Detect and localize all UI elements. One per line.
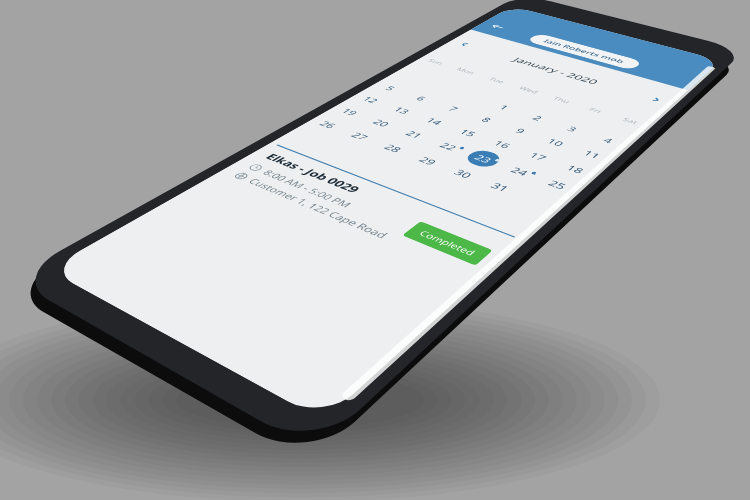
staticText: 26 (316, 119, 340, 130)
staticText: 30 (451, 167, 476, 180)
button[interactable]: 16 (481, 134, 523, 155)
button[interactable]: 31 (478, 175, 523, 199)
staticText: Elkas - Job 0029 (261, 151, 364, 195)
staticText: 1 (496, 103, 512, 112)
button[interactable]: 12 (351, 91, 391, 109)
staticText: Iain Roberts mob (541, 38, 627, 65)
button[interactable]: 21 (393, 124, 435, 145)
button[interactable]: 11 (571, 144, 613, 165)
staticText: 6 (413, 94, 429, 102)
button[interactable]: 23 (462, 148, 505, 170)
button[interactable]: Previous month (444, 36, 484, 53)
staticText: 22 (436, 140, 460, 152)
button[interactable]: 17 (517, 146, 559, 167)
button[interactable]: 26 (307, 115, 349, 134)
button[interactable]: Completed (402, 221, 493, 266)
button[interactable]: Back (477, 19, 519, 35)
button[interactable]: 22 (427, 136, 470, 157)
button[interactable]: 28 (372, 138, 415, 159)
staticText: 28 (381, 142, 405, 154)
staticText: 29 (415, 155, 440, 167)
staticText: 14 (423, 116, 446, 127)
staticText: Tue (487, 76, 507, 84)
staticText: 31 (487, 180, 513, 194)
staticText: 24 (507, 165, 532, 178)
button[interactable]: 14 (414, 112, 455, 131)
staticText: Wed (517, 85, 541, 95)
button[interactable]: 6 (402, 90, 441, 107)
staticText: 7 (445, 105, 461, 113)
staticText: 18 (563, 163, 587, 176)
staticText: 11 (580, 148, 604, 161)
button[interactable]: 3 (552, 119, 592, 139)
button[interactable]: 10 (535, 132, 576, 153)
staticText: Sat (621, 116, 641, 126)
staticText: Sun (426, 58, 446, 66)
staticText: Completed (416, 228, 478, 258)
staticText: 20 (370, 117, 393, 129)
button[interactable]: 20 (361, 113, 402, 133)
staticText: 8 (478, 115, 494, 124)
button[interactable]: Iain Roberts mob (525, 33, 643, 71)
staticText: 15 (456, 127, 479, 139)
button[interactable]: 5 (371, 80, 410, 97)
staticText: 13 (390, 105, 413, 116)
button[interactable]: 30 (441, 162, 486, 185)
button[interactable]: 9 (500, 121, 541, 141)
staticText: Mon (454, 66, 477, 75)
staticText: 2 (530, 114, 545, 122)
staticText: 10 (544, 137, 567, 148)
staticText: 9 (512, 126, 528, 135)
button[interactable]: Elkas - Job 0029 (208, 143, 522, 289)
staticText: 27 (348, 130, 372, 142)
button[interactable]: 7 (433, 100, 473, 118)
button[interactable]: 1 (485, 98, 524, 116)
button[interactable]: 15 (447, 123, 489, 143)
staticText: 5 (382, 84, 398, 92)
staticText: Fri (587, 106, 604, 114)
staticText: 8:00 AM - 5:00 PM (260, 168, 355, 209)
button[interactable]: 8 (466, 110, 507, 129)
staticText: 4 (600, 136, 616, 145)
staticText: 21 (402, 129, 426, 140)
button[interactable]: Next month (634, 90, 678, 110)
staticText: 16 (491, 138, 514, 150)
staticText: January - 2020 (510, 56, 601, 86)
staticText: 17 (526, 150, 550, 163)
button[interactable]: 27 (339, 126, 381, 146)
button[interactable]: 4 (588, 130, 629, 151)
staticText: Thu (551, 95, 573, 105)
button[interactable]: 13 (382, 101, 422, 120)
button[interactable]: 24 (498, 160, 542, 183)
staticText: 23 (471, 152, 495, 165)
staticText: 12 (359, 95, 382, 105)
button[interactable]: 18 (554, 158, 597, 181)
button[interactable]: 25 (535, 173, 580, 197)
button[interactable]: 19 (329, 103, 370, 121)
button[interactable]: 2 (518, 109, 558, 127)
button[interactable]: 29 (406, 150, 450, 172)
staticText: 19 (338, 107, 361, 117)
staticText: Customer 1, 122 Cape Road (245, 176, 392, 240)
staticText: 25 (545, 178, 570, 192)
staticText: 3 (564, 124, 580, 133)
